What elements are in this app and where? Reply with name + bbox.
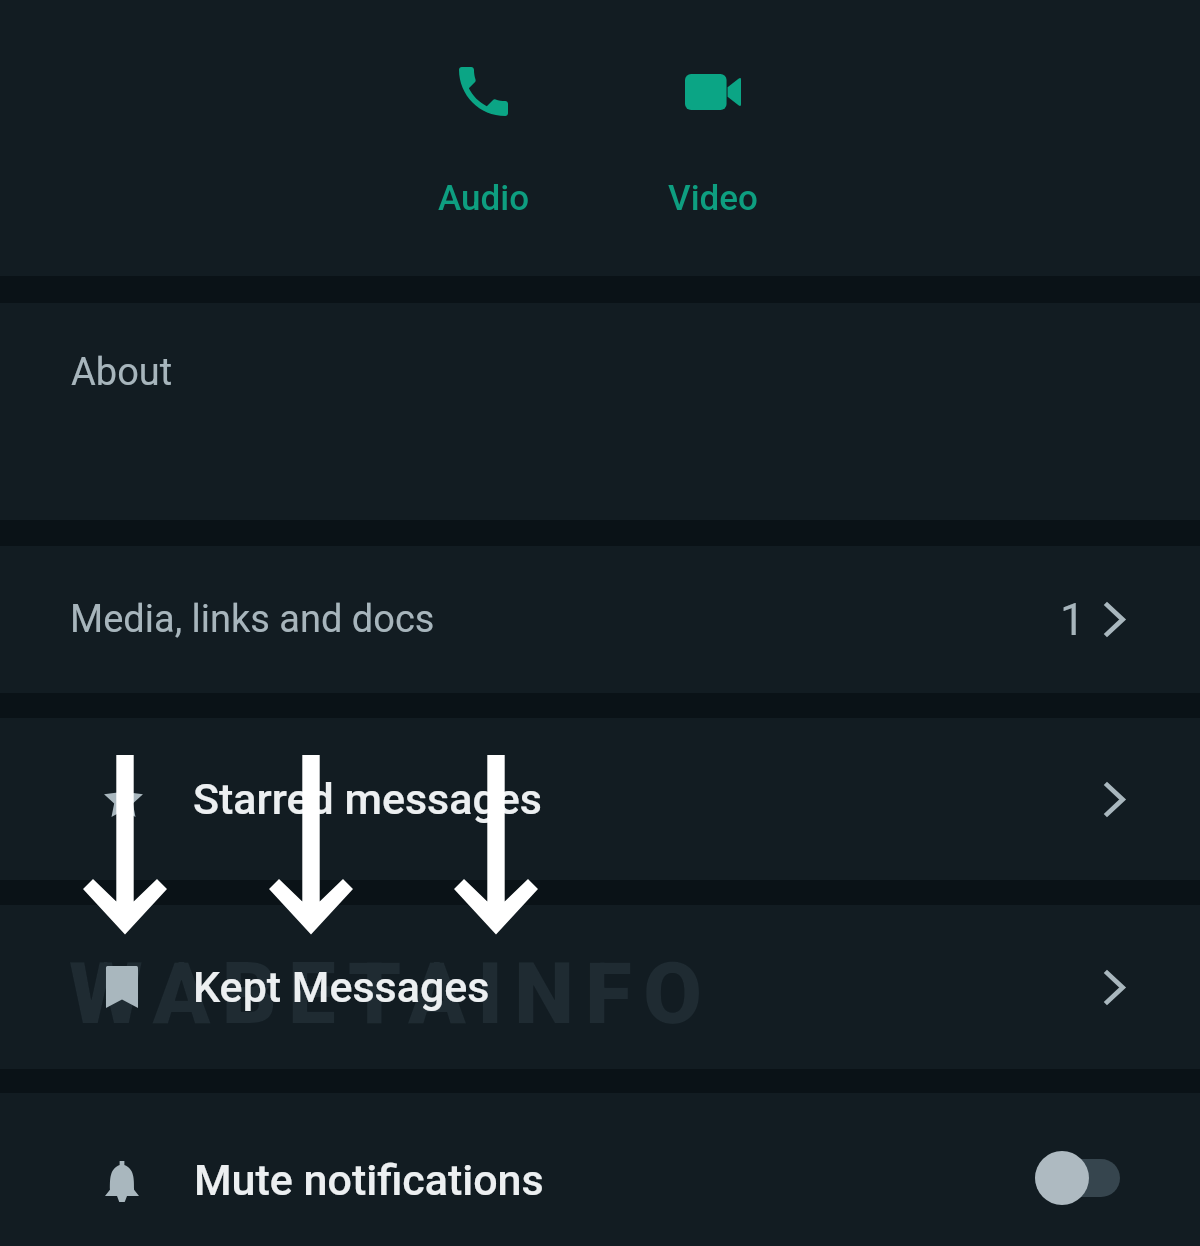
staticText: WABETAINFO bbox=[69, 944, 714, 1044]
staticText: Mute notifications bbox=[194, 1155, 544, 1205]
button[interactable]: Audio bbox=[369, 0, 598, 219]
staticText: 1 bbox=[1060, 594, 1085, 646]
button[interactable]: Mute notifications, off bbox=[1035, 1151, 1120, 1205]
button[interactable]: Starred messages bbox=[0, 718, 1200, 880]
button[interactable]: Media, links and docs bbox=[0, 546, 1200, 693]
staticText: Audio bbox=[438, 178, 529, 219]
staticText: Video bbox=[668, 178, 758, 219]
staticText: Media, links and docs bbox=[70, 597, 435, 642]
staticText: Kept Messages bbox=[193, 962, 490, 1012]
button[interactable]: Kept Messages bbox=[0, 905, 1200, 1069]
button[interactable]: Mute notifications bbox=[0, 1093, 1200, 1246]
button[interactable]: About bbox=[0, 303, 1200, 520]
staticText: Starred messages bbox=[193, 774, 542, 824]
staticText: About bbox=[71, 350, 173, 395]
button[interactable]: Video bbox=[598, 0, 827, 219]
